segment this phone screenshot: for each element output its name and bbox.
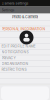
staticText: PERSONAL INFORMATION [1,27,45,31]
button[interactable]: Settings [0,7,50,14]
button[interactable]: NOTIFICATIONS [0,49,50,55]
staticText: EDIT PROFILE NAME [1,44,35,48]
staticText: PRIVACY [1,56,15,60]
button[interactable]: PERSONAL INFORMATION [0,26,50,32]
button[interactable]: PRIVACY [0,55,50,61]
button[interactable]: EDIT PROFILE NAME [0,44,50,49]
button[interactable]: Profile photo [19,30,33,44]
staticText: Camera settings [1,1,28,5]
staticText: ORGANISATION [1,62,28,66]
staticText: RESTRICTIONS [1,67,26,72]
button[interactable]: RESTRICTIONS [0,67,50,72]
staticText: Photo & Camera [12,14,38,19]
staticText: Settings [1,8,14,12]
staticText: NOTIFICATIONS [1,50,28,54]
button[interactable]: ORGANISATION [0,61,50,66]
